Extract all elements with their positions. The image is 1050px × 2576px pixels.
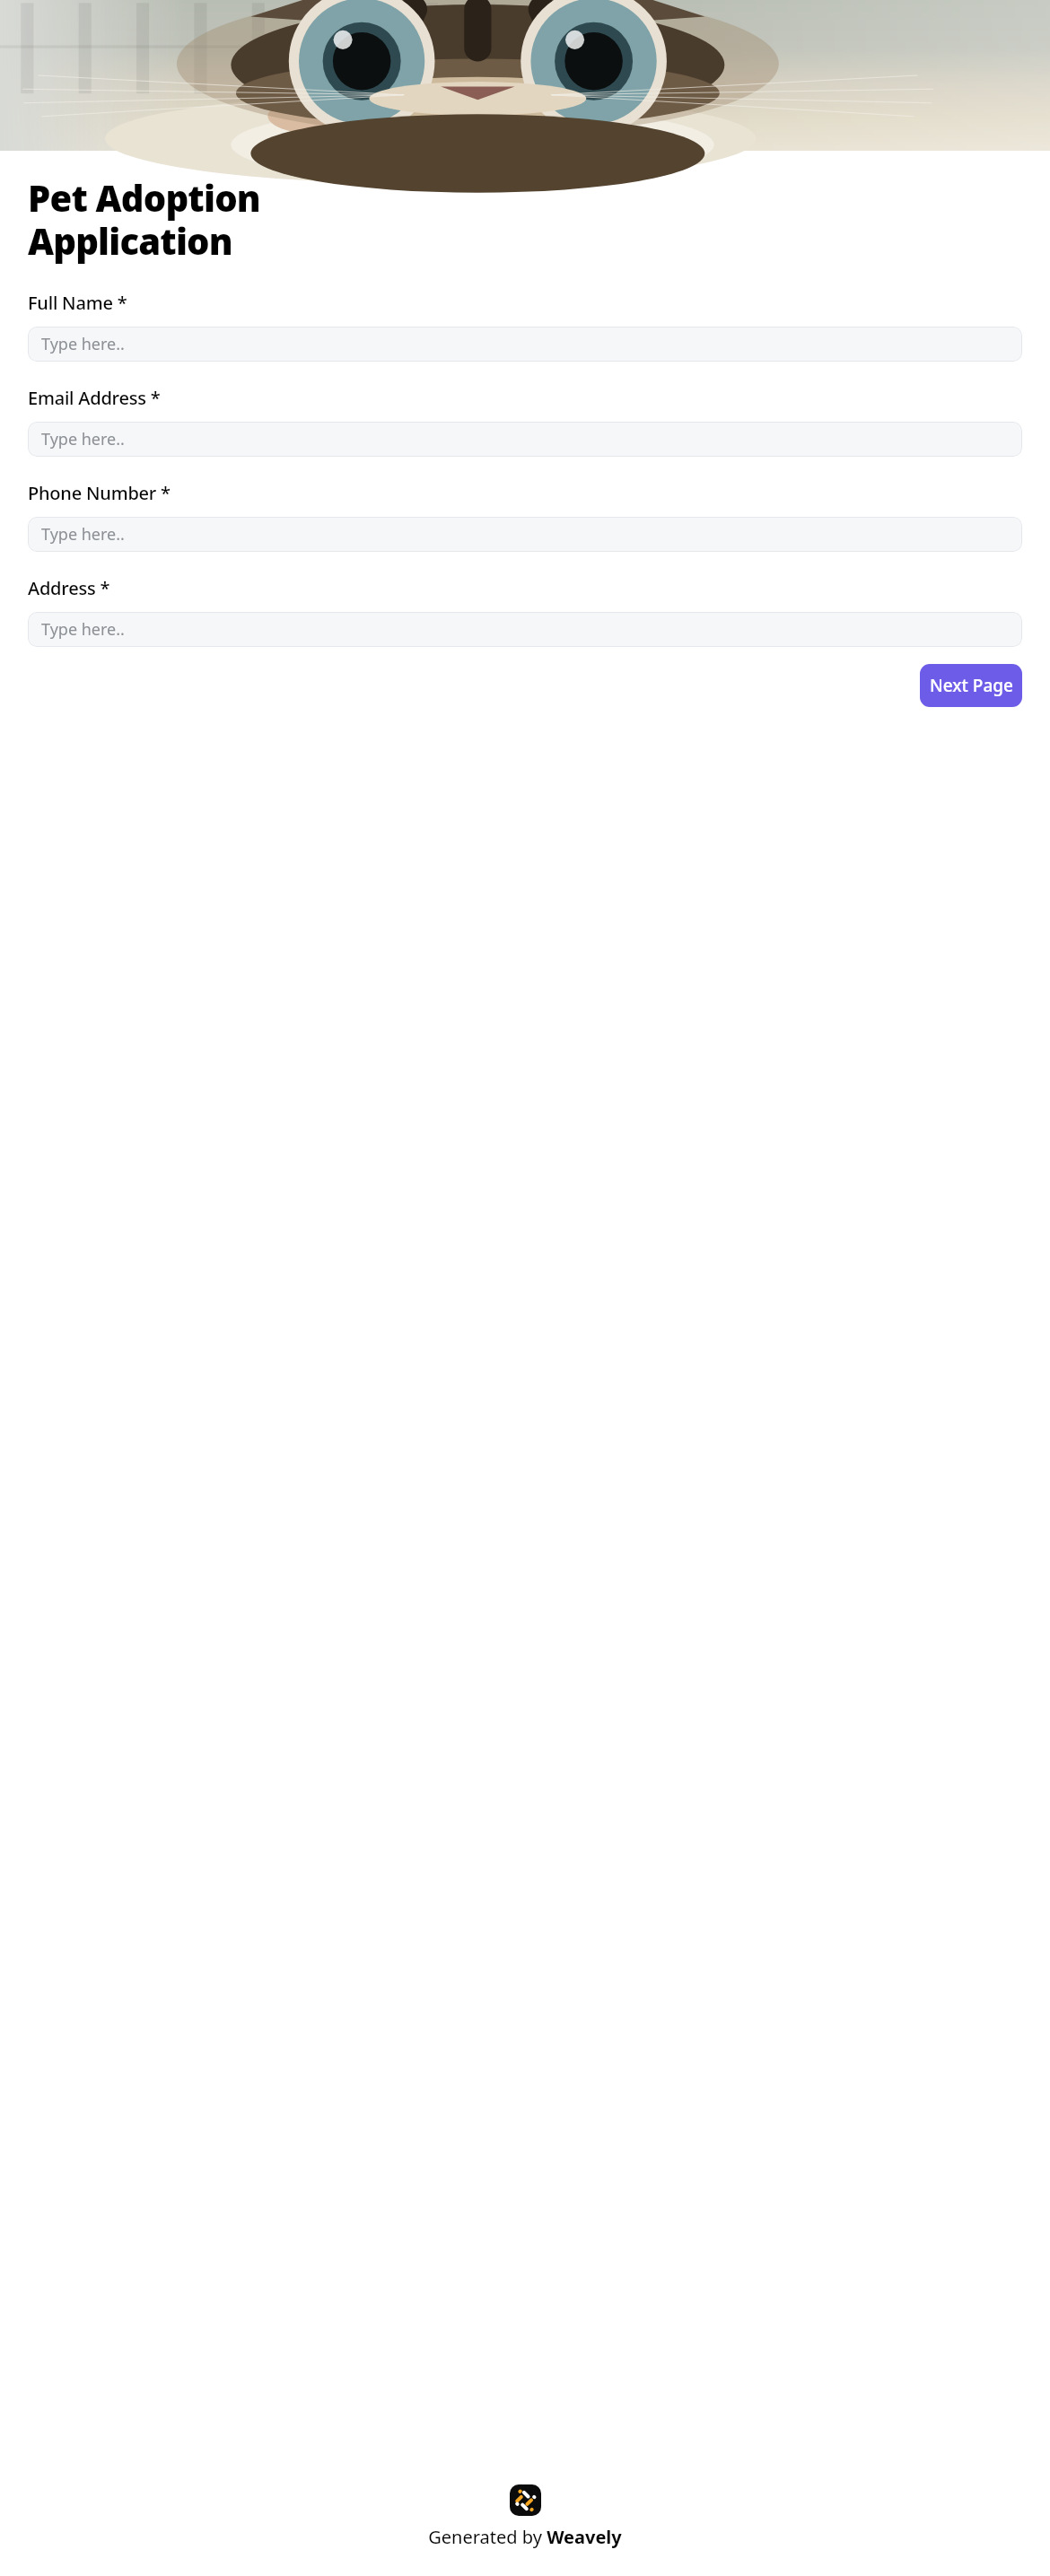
staticText: Type here..	[41, 523, 125, 546]
button[interactable]: Weavely logo	[0, 2484, 1050, 2549]
staticText: Generated by Weavely	[428, 2525, 622, 2549]
button[interactable]: Next Page	[920, 664, 1022, 707]
button[interactable]: Type here..	[28, 517, 1022, 552]
staticText: Next Page	[930, 674, 1013, 697]
other: Weavely logo	[510, 2484, 541, 2516]
staticText: Type here..	[41, 333, 125, 355]
button[interactable]: Type here..	[28, 612, 1022, 647]
button[interactable]: Type here..	[28, 327, 1022, 362]
staticText: Type here..	[41, 428, 125, 450]
staticText: Address *	[28, 576, 110, 600]
staticText: Pet Adoption Application	[28, 173, 260, 266]
staticText: Phone Number *	[28, 481, 171, 505]
staticText: Full Name *	[28, 291, 127, 315]
button[interactable]: Type here..	[28, 422, 1022, 457]
staticText: Type here..	[41, 618, 125, 641]
staticText: Email Address *	[28, 386, 161, 410]
